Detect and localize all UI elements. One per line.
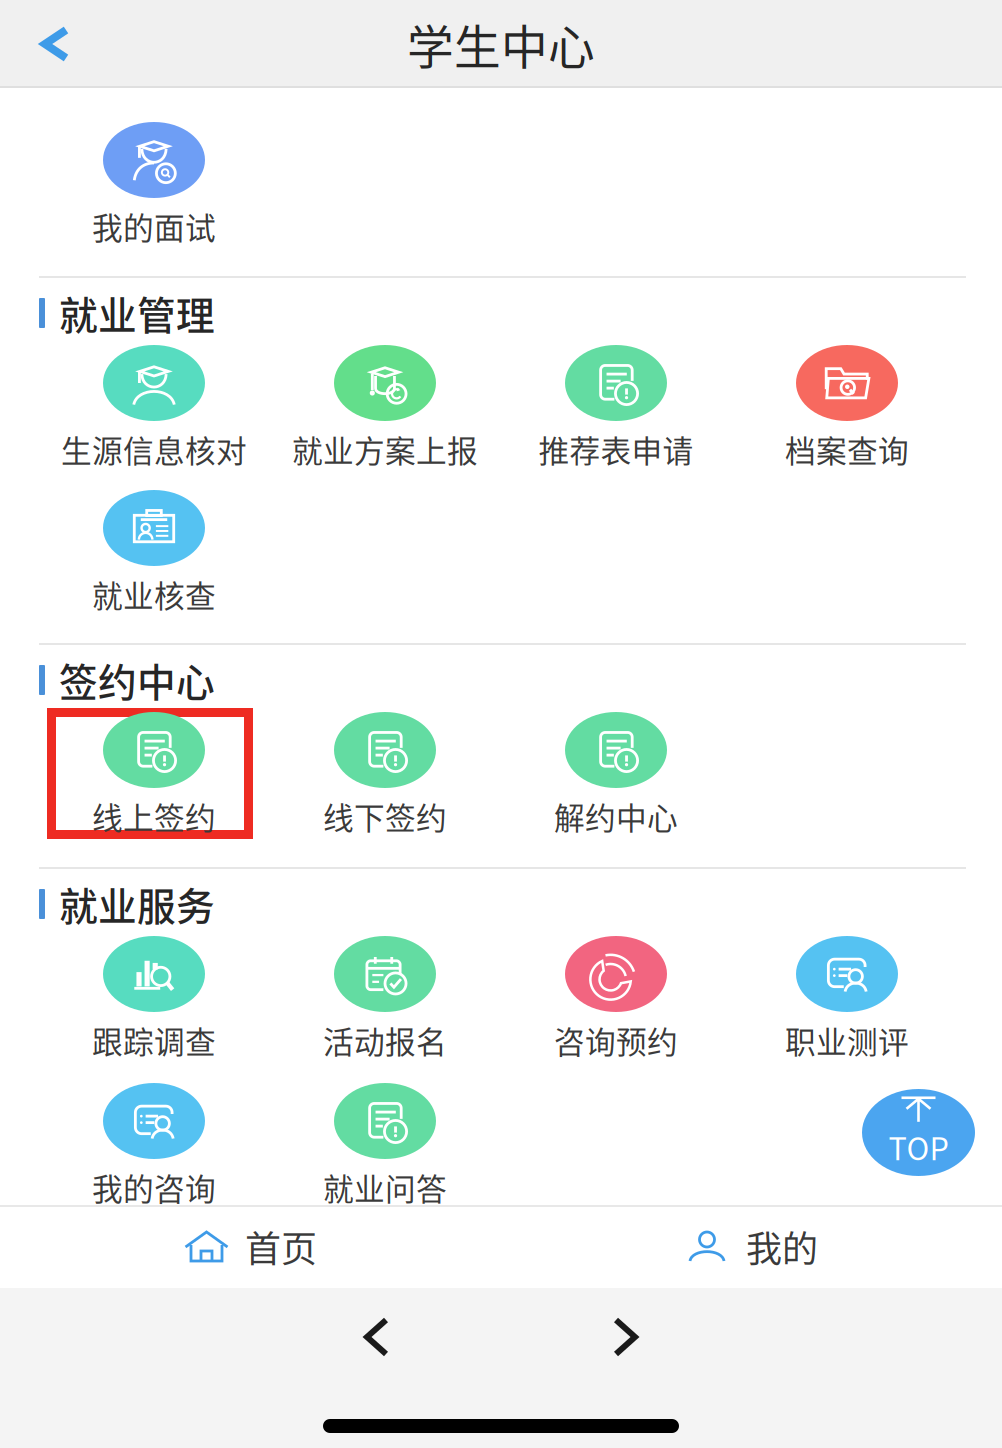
button[interactable]: 首页: [0, 1206, 501, 1286]
staticText: 线下签约: [323, 794, 447, 838]
button[interactable]: 活动报名: [282, 936, 488, 1068]
staticText: 就业服务: [59, 876, 215, 932]
staticText: 我的面试: [92, 204, 216, 248]
button[interactable]: 就业问答: [282, 1083, 488, 1215]
staticText: 我的: [746, 1220, 818, 1272]
button[interactable]: Back to top: [862, 1089, 975, 1176]
staticText: 签约中心: [59, 652, 215, 708]
button[interactable]: Back: [0, 0, 99, 88]
button[interactable]: 我的咨询: [51, 1083, 257, 1215]
staticText: 就业管理: [59, 285, 215, 341]
button[interactable]: 咨询预约: [513, 936, 719, 1068]
staticText: 就业方案上报: [292, 427, 478, 471]
button[interactable]: 我的: [501, 1206, 1002, 1286]
staticText: 就业核查: [92, 572, 216, 616]
staticText: 推荐表申请: [538, 427, 693, 471]
staticText: 职业测评: [785, 1018, 909, 1062]
staticText: 档案查询: [785, 427, 909, 471]
button[interactable]: 我的面试: [51, 122, 257, 254]
staticText: 线上签约: [92, 794, 216, 838]
staticText: 我的咨询: [92, 1165, 216, 1209]
button[interactable]: 推荐表申请: [513, 345, 719, 477]
staticText: 学生中心: [407, 10, 595, 78]
button[interactable]: 档案查询: [744, 345, 950, 477]
staticText: 跟踪调查: [92, 1018, 216, 1062]
staticText: 就业问答: [323, 1165, 447, 1209]
button[interactable]: 线下签约: [282, 712, 488, 844]
button[interactable]: 线上签约: [51, 712, 257, 844]
staticText: TOP: [888, 1125, 948, 1169]
button[interactable]: 就业核查: [51, 490, 257, 622]
button[interactable]: Back: [362, 1317, 391, 1357]
button[interactable]: 职业测评: [744, 936, 950, 1068]
staticText: 咨询预约: [554, 1018, 678, 1062]
button[interactable]: 就业方案上报: [282, 345, 488, 477]
button[interactable]: 解约中心: [513, 712, 719, 844]
staticText: 生源信息核对: [61, 427, 247, 471]
button[interactable]: 生源信息核对: [51, 345, 257, 477]
staticText: 解约中心: [554, 794, 678, 838]
button[interactable]: 跟踪调查: [51, 936, 257, 1068]
staticText: 首页: [245, 1220, 317, 1272]
button[interactable]: Forward: [611, 1317, 640, 1357]
staticText: 活动报名: [323, 1018, 447, 1062]
